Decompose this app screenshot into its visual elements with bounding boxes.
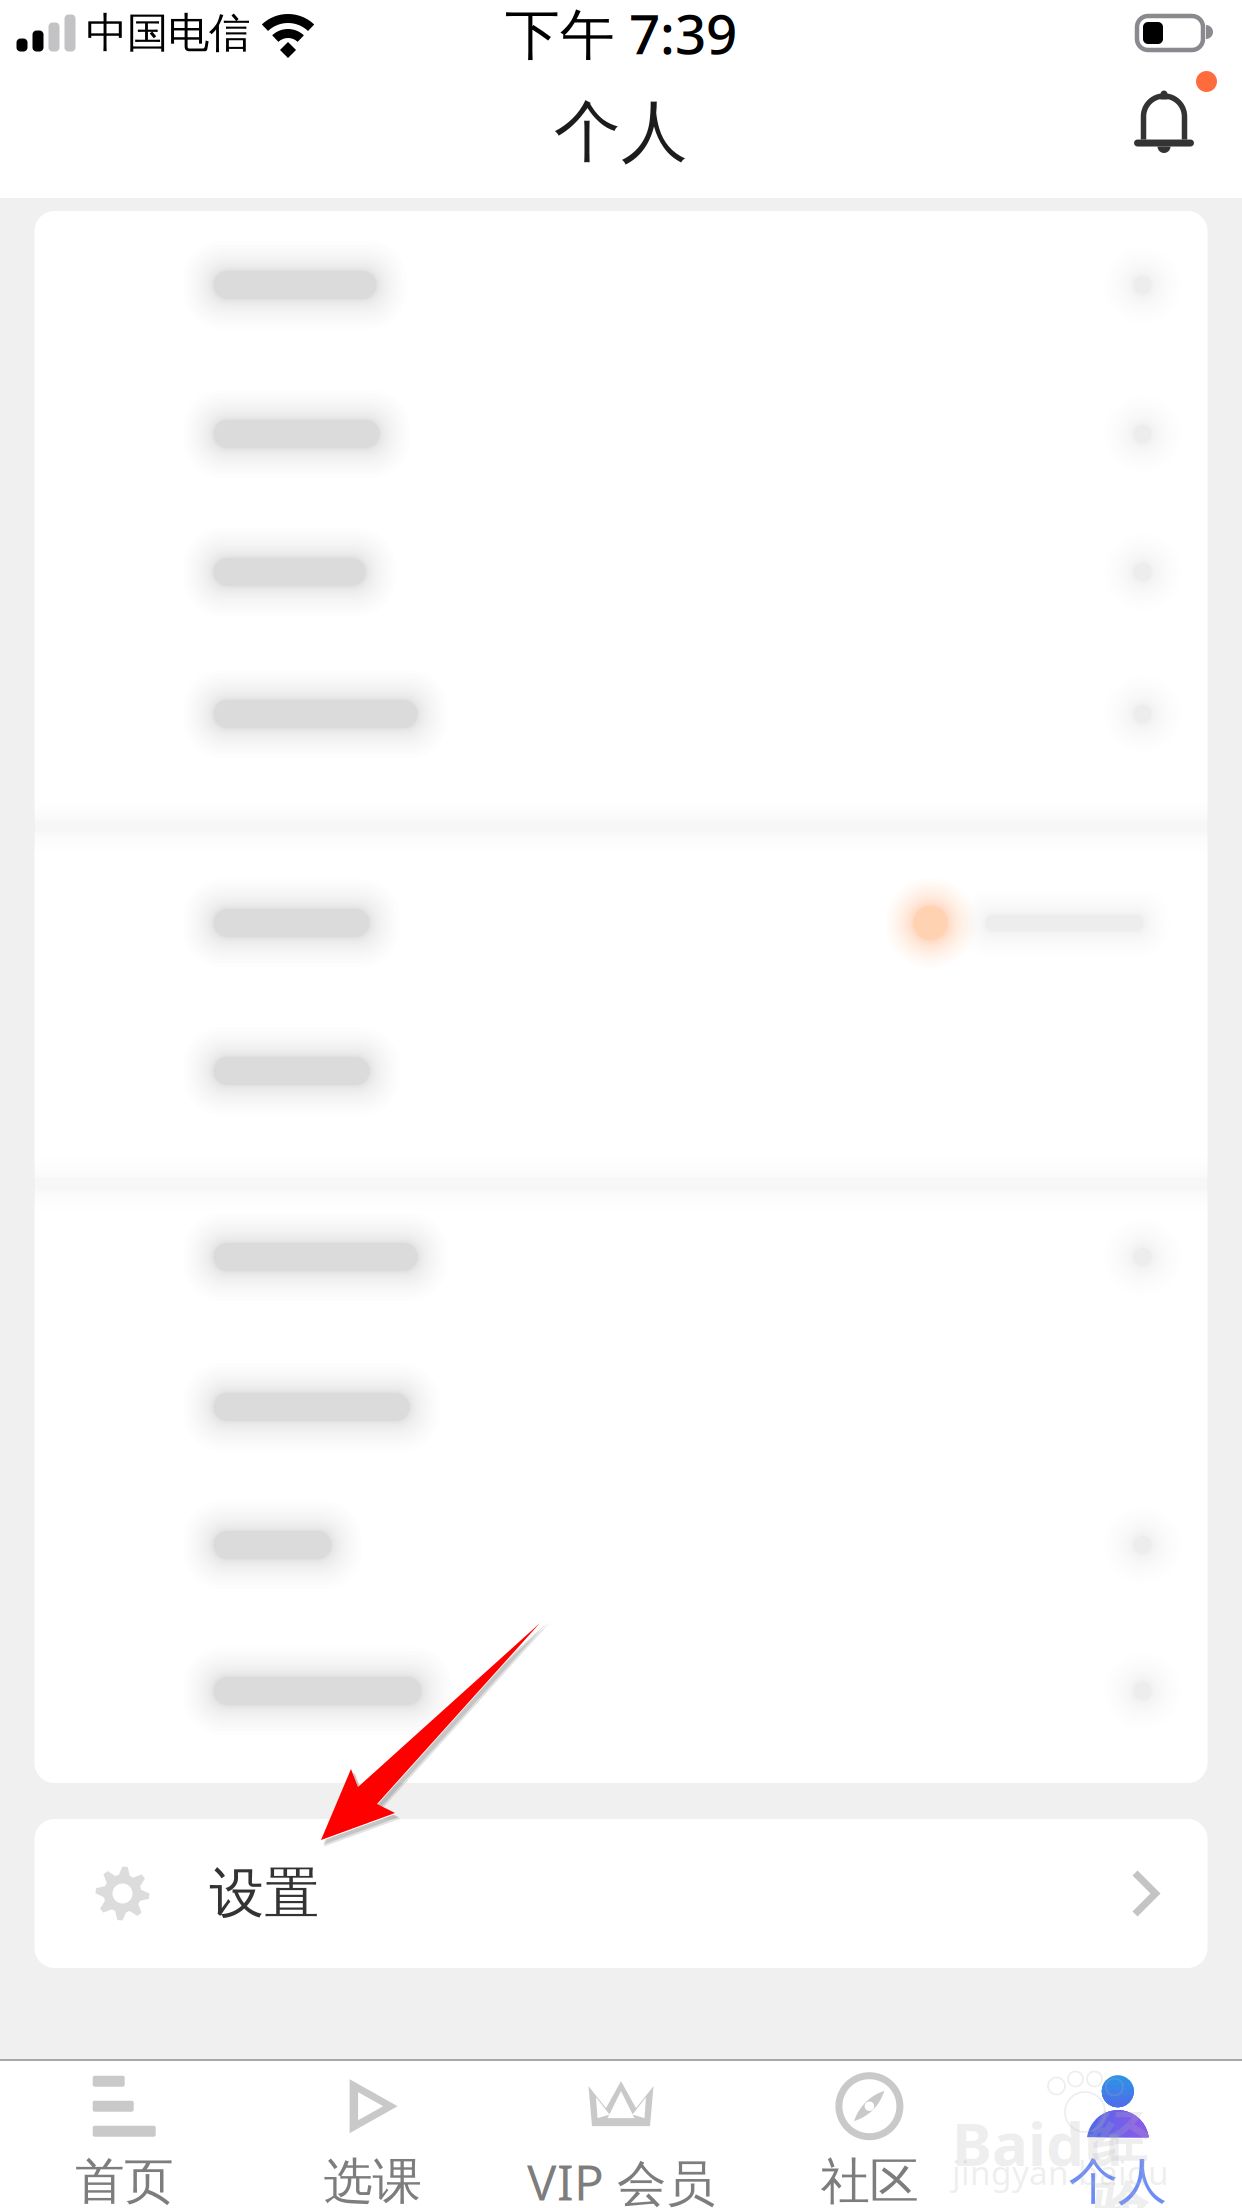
staticText: 个人 — [1069, 2151, 1167, 2208]
staticText: 选课 — [324, 2151, 422, 2208]
staticText: 下午 7:39 — [505, 0, 737, 69]
button[interactable]: 设置 — [34, 1819, 1207, 1968]
button[interactable]: 个人 — [994, 2061, 1242, 2208]
button[interactable]: 首页 — [0, 2061, 248, 2208]
staticText: 首页 — [75, 2151, 173, 2208]
staticText: 个人 — [554, 91, 688, 173]
staticText: 设置 — [209, 1860, 319, 1927]
staticText: VIP 会员 — [527, 2149, 715, 2208]
button[interactable]: 社区 — [745, 2061, 994, 2208]
staticText: 社区 — [820, 2151, 918, 2208]
button[interactable]: 选课 — [248, 2061, 497, 2208]
button[interactable]: VIP 会员 — [497, 2061, 745, 2208]
staticText: 经验 — [1092, 2105, 1148, 2208]
staticText: 中国电信 — [86, 8, 250, 58]
button[interactable]: 通知 — [1116, 66, 1224, 198]
staticText: jingyan.baidu.com — [952, 2150, 1169, 2208]
staticText: Baidu — [952, 2103, 1123, 2183]
